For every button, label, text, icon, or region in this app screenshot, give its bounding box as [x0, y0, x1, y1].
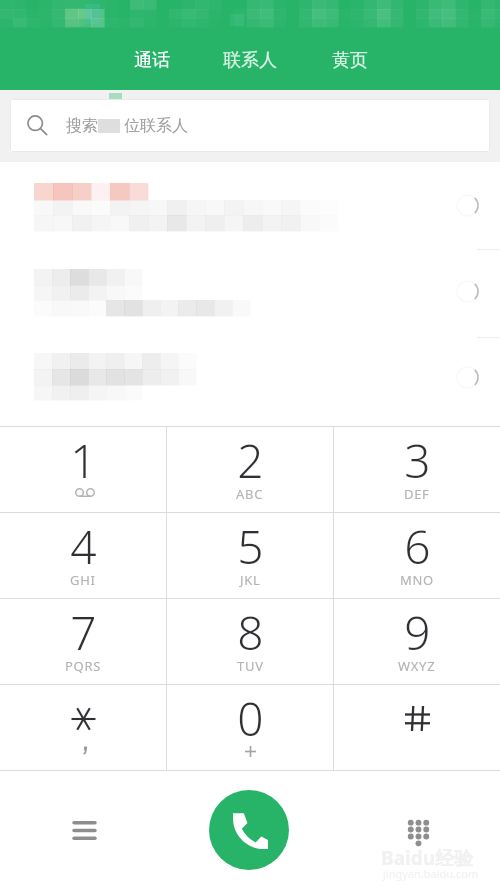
button[interactable]: Call details	[446, 356, 490, 400]
button[interactable]: 0	[167, 685, 333, 770]
staticText: 6	[404, 515, 431, 578]
staticText: JKL	[240, 571, 261, 589]
button[interactable]: Menu	[53, 799, 115, 861]
staticText: TUV	[237, 657, 264, 675]
button[interactable]: 3	[334, 427, 500, 512]
button[interactable]: Call details	[0, 256, 500, 342]
staticText: jingyan.baidu.com	[383, 866, 479, 881]
staticText: 位联系人	[124, 116, 188, 136]
staticText: 0	[237, 687, 264, 750]
staticText: 7	[70, 601, 97, 664]
button[interactable]: 黄页	[320, 43, 379, 77]
staticText: MNO	[400, 571, 434, 589]
button[interactable]: 9	[334, 599, 500, 684]
staticText: 1	[70, 429, 97, 492]
button[interactable]: Call details	[446, 270, 490, 314]
staticText: GHI	[70, 571, 96, 589]
button[interactable]: 搜索	[10, 99, 490, 152]
staticText: Baidu经验	[381, 845, 474, 871]
button[interactable]: 5	[167, 513, 333, 598]
staticText: 4	[70, 515, 97, 578]
button[interactable]	[334, 685, 500, 770]
staticText: 黄页	[332, 49, 368, 72]
button[interactable]: Call details	[0, 170, 500, 256]
button[interactable]: 联系人	[211, 43, 288, 77]
button[interactable]: 8	[167, 599, 333, 684]
staticText: ABC	[236, 485, 264, 503]
button[interactable]: 1	[0, 427, 166, 512]
staticText: 2	[237, 429, 264, 492]
staticText: 通话	[134, 49, 170, 72]
staticText: 9	[404, 601, 431, 664]
staticText: PQRS	[65, 657, 102, 675]
button[interactable]: Call details	[446, 184, 490, 228]
staticText: 8	[237, 601, 264, 664]
button[interactable]: 7	[0, 599, 166, 684]
staticText: WXYZ	[398, 657, 436, 675]
button[interactable]: Dialpad	[387, 802, 449, 864]
button[interactable]: Call details	[0, 342, 500, 428]
staticText: DEF	[404, 485, 430, 503]
staticText: 5	[237, 515, 264, 578]
button[interactable]: 6	[334, 513, 500, 598]
button[interactable]: Call	[209, 790, 289, 870]
staticText: 搜索	[66, 116, 98, 136]
button[interactable]: 2	[167, 427, 333, 512]
button[interactable]	[0, 685, 166, 770]
button[interactable]: 4	[0, 513, 166, 598]
button[interactable]: 通话	[122, 43, 181, 77]
staticText: 联系人	[223, 49, 277, 72]
staticText: 3	[404, 429, 431, 492]
